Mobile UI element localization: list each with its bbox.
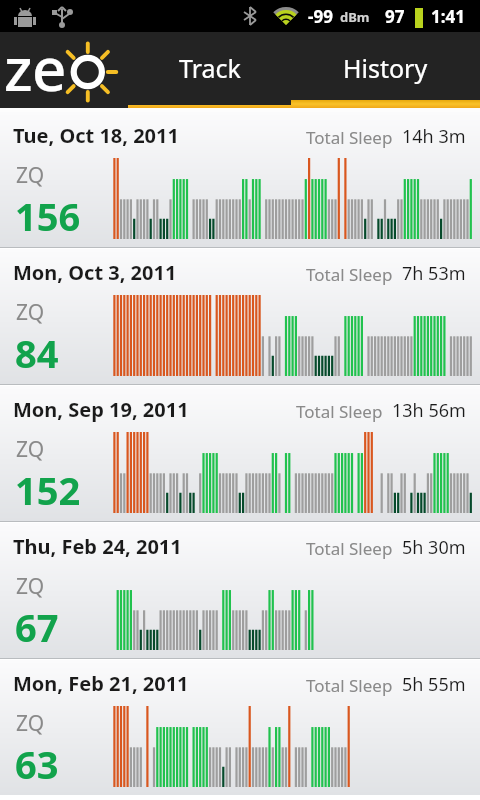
staticText: 14h 3m [402, 124, 466, 149]
staticText: History [343, 51, 428, 85]
button[interactable]: Mon, Sep 19, 2011 [0, 386, 480, 521]
staticText: Total Sleep [306, 263, 393, 286]
staticText: Total Sleep [296, 400, 383, 423]
staticText: Mon, Oct 3, 2011 [13, 259, 177, 286]
staticText: 152 [15, 464, 81, 516]
staticText: 7h 53m [402, 261, 466, 286]
staticText: 1:41 [431, 5, 465, 28]
staticText: Total Sleep [306, 674, 393, 697]
staticText: ze [4, 27, 67, 103]
staticText: 63 [15, 738, 59, 790]
staticText: Tue, Oct 18, 2011 [13, 122, 179, 149]
staticText: 156 [15, 190, 81, 242]
staticText: 5h 30m [402, 535, 466, 560]
staticText: Total Sleep [306, 537, 393, 560]
button[interactable]: Mon, Feb 21, 2011 [0, 660, 480, 795]
staticText: Mon, Sep 19, 2011 [13, 396, 189, 423]
staticText: dBm [340, 8, 370, 26]
staticText: Thu, Feb 24, 2011 [13, 533, 182, 560]
button[interactable]: History [291, 32, 480, 108]
button[interactable]: Zeo home [0, 32, 128, 108]
staticText: ZQ [16, 161, 45, 190]
staticText: ZQ [16, 435, 45, 464]
staticText: Track [179, 51, 241, 85]
button[interactable]: Tue, Oct 18, 2011 [0, 112, 480, 247]
staticText: 5h 55m [402, 672, 466, 697]
staticText: 84 [15, 327, 59, 379]
staticText: -99 [308, 5, 333, 28]
staticText: 13h 56m [392, 398, 466, 423]
button[interactable]: Mon, Oct 3, 2011 [0, 249, 480, 384]
staticText: Mon, Feb 21, 2011 [13, 670, 189, 697]
staticText: ZQ [16, 709, 45, 738]
staticText: ZQ [16, 572, 45, 601]
staticText: Total Sleep [306, 126, 393, 149]
staticText: 67 [15, 601, 59, 653]
staticText: ZQ [16, 298, 45, 327]
button[interactable]: Track [128, 32, 291, 108]
button[interactable]: Thu, Feb 24, 2011 [0, 523, 480, 658]
staticText: 97 [385, 5, 405, 28]
